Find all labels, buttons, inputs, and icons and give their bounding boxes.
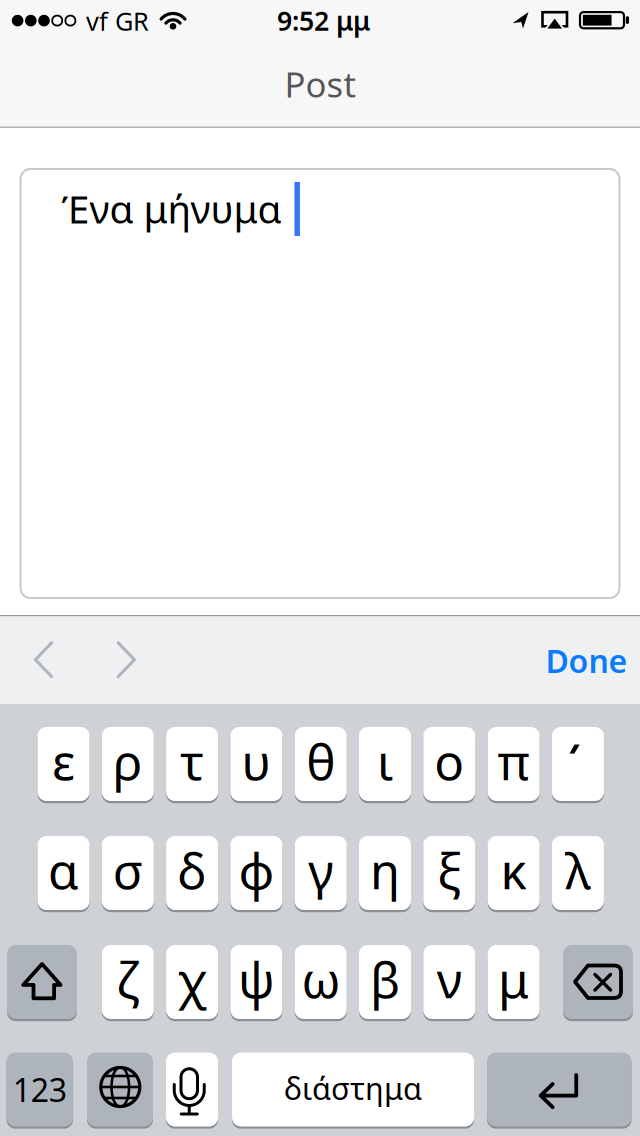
button[interactable]: μ — [488, 945, 540, 1019]
button[interactable]: χ — [166, 945, 218, 1019]
button[interactable]: ν — [423, 945, 475, 1019]
staticText: λ — [565, 838, 591, 903]
button[interactable] — [487, 1052, 631, 1126]
button[interactable]: η — [359, 836, 411, 910]
staticText: υ — [241, 729, 271, 794]
button[interactable]: φ — [230, 836, 282, 910]
staticText: 123 — [13, 1068, 67, 1111]
button[interactable]: 123 — [6, 1052, 73, 1126]
button[interactable]: ε — [37, 727, 89, 801]
button[interactable]: δ — [166, 836, 218, 910]
button[interactable]: υ — [230, 727, 282, 801]
staticText: χ — [178, 947, 207, 1012]
button[interactable]: ξ — [423, 836, 475, 910]
button[interactable] — [552, 727, 604, 801]
staticText: vf GR — [86, 4, 149, 38]
staticText: ν — [437, 947, 462, 1012]
button[interactable] — [20, 169, 619, 598]
staticText: φ — [238, 838, 274, 903]
staticText: β — [370, 947, 400, 1012]
button[interactable]: σ — [102, 836, 154, 910]
button[interactable]: τ — [166, 727, 218, 801]
staticText: μ — [498, 947, 529, 1012]
button[interactable]: ι — [359, 727, 411, 801]
staticText: δ — [178, 838, 207, 903]
staticText: ι — [377, 729, 393, 794]
staticText: Ένα μήνυμα — [61, 183, 281, 234]
staticText: Done — [545, 639, 627, 682]
button[interactable]: ο — [423, 727, 475, 801]
staticText: 9:52 μμ — [277, 3, 370, 38]
staticText: Post — [284, 61, 356, 107]
staticText: γ — [308, 838, 333, 903]
staticText: ζ — [116, 947, 139, 1012]
button[interactable]: διάστημα — [232, 1052, 474, 1126]
staticText: ψ — [238, 947, 275, 1012]
staticText: ω — [301, 947, 340, 1012]
staticText: ο — [434, 729, 464, 794]
staticText: π — [498, 729, 530, 794]
button[interactable]: β — [359, 945, 411, 1019]
staticText: σ — [113, 838, 143, 903]
staticText: ε — [52, 729, 75, 794]
staticText: διάστημα — [284, 1068, 422, 1108]
button[interactable]: ρ — [102, 727, 154, 801]
staticText: ρ — [113, 729, 143, 794]
button[interactable]: ω — [295, 945, 347, 1019]
staticText: ξ — [437, 838, 461, 903]
button[interactable]: κ — [488, 836, 540, 910]
staticText: τ — [180, 729, 204, 794]
button[interactable] — [87, 1052, 153, 1126]
staticText: κ — [501, 838, 527, 903]
button[interactable] — [166, 1052, 218, 1126]
button[interactable]: ζ — [102, 945, 154, 1019]
button[interactable] — [100, 634, 152, 686]
button[interactable]: ψ — [230, 945, 282, 1019]
staticText: θ — [306, 729, 335, 794]
button[interactable] — [563, 945, 633, 1019]
staticText: α — [48, 838, 79, 903]
button[interactable]: θ — [295, 727, 347, 801]
button[interactable] — [17, 634, 69, 686]
button[interactable]: π — [488, 727, 540, 801]
button[interactable]: λ — [552, 836, 604, 910]
button[interactable]: Done — [545, 639, 627, 682]
button[interactable]: γ — [295, 836, 347, 910]
button[interactable] — [7, 945, 77, 1019]
button[interactable]: α — [37, 836, 89, 910]
staticText: η — [370, 838, 400, 903]
